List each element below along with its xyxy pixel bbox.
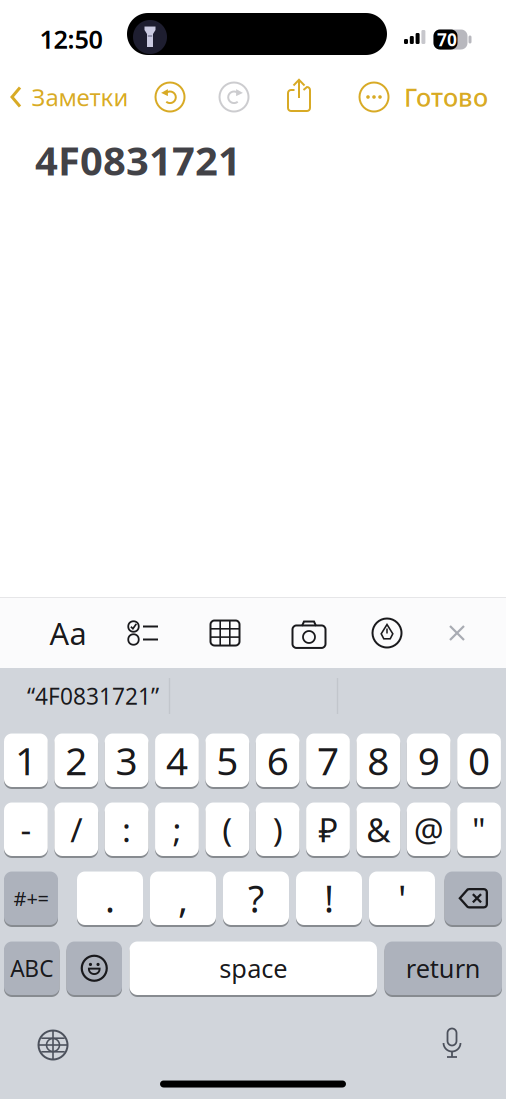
button[interactable] [285, 77, 313, 113]
staticText: 9 [418, 735, 440, 786]
staticText: - [20, 807, 31, 851]
staticText: ; [172, 807, 181, 851]
button[interactable]: " [457, 801, 501, 857]
button[interactable]: ? [223, 870, 289, 926]
button[interactable]: #+= [4, 870, 58, 926]
staticText: , [178, 873, 188, 923]
button[interactable]: 5 [205, 732, 249, 788]
staticText: Aa [49, 613, 86, 653]
staticText: space [219, 951, 287, 985]
button[interactable] [154, 81, 185, 112]
button[interactable]: Готово [404, 80, 488, 114]
button[interactable]: @ [407, 801, 451, 857]
button[interactable]: ₽ [306, 801, 350, 857]
staticText: 0 [468, 735, 490, 786]
staticText: 6 [267, 735, 289, 786]
button[interactable]: 4 [155, 732, 199, 788]
button[interactable] [439, 1026, 465, 1062]
staticText: 70 [437, 28, 457, 51]
button[interactable] [127, 619, 159, 647]
button[interactable]: ABC [4, 940, 59, 996]
button[interactable] [66, 940, 122, 996]
button[interactable]: ) [256, 801, 299, 857]
button[interactable] [36, 1028, 70, 1062]
staticText: 4F0831721 [35, 133, 241, 186]
staticText: " [472, 807, 486, 851]
button[interactable]: 2 [54, 732, 98, 788]
button[interactable] [291, 619, 327, 648]
staticText: 12:50 [39, 22, 102, 56]
button[interactable] [358, 81, 389, 112]
staticText: 8 [367, 735, 389, 786]
button[interactable]: 8 [356, 732, 400, 788]
button[interactable]: 1 [4, 732, 48, 788]
button[interactable]: space [129, 940, 377, 996]
staticText: 3 [116, 735, 138, 786]
button[interactable]: 3 [105, 732, 148, 788]
button[interactable]: ( [205, 801, 249, 857]
button[interactable]: / [54, 801, 98, 857]
button[interactable]: , [150, 870, 216, 926]
staticText: @ [414, 807, 444, 851]
button[interactable]: ; [155, 801, 199, 857]
button[interactable]: ' [369, 870, 435, 926]
staticText: #+= [13, 885, 48, 912]
staticText: 5 [216, 735, 238, 786]
button[interactable]: : [105, 801, 148, 857]
staticText: Заметки [31, 81, 128, 113]
button[interactable] [209, 619, 240, 646]
staticText: & [366, 807, 390, 851]
staticText: return [406, 951, 481, 985]
staticText: 7 [317, 735, 339, 786]
staticText: ( [222, 807, 232, 851]
button[interactable]: Aa [49, 613, 86, 653]
button[interactable] [444, 870, 502, 926]
staticText: ! [324, 873, 334, 923]
button[interactable]: - [4, 801, 48, 857]
staticText: Готово [404, 80, 488, 114]
button[interactable]: 6 [256, 732, 299, 788]
staticText: . [105, 873, 115, 923]
button[interactable]: 7 [306, 732, 350, 788]
staticText: “4F0831721” [27, 681, 159, 711]
button[interactable]: ! [296, 870, 362, 926]
staticText: ABC [10, 953, 53, 983]
staticText: 2 [65, 735, 87, 786]
staticText: 1 [15, 735, 37, 786]
staticText: ) [273, 807, 283, 851]
staticText: ' [398, 873, 406, 923]
button[interactable] [447, 623, 467, 643]
staticText: 4 [166, 735, 188, 786]
button[interactable]: “4F0831721” [27, 681, 159, 711]
button[interactable]: & [356, 801, 400, 857]
staticText: ? [248, 873, 264, 923]
button[interactable]: 9 [407, 732, 451, 788]
staticText: / [70, 807, 82, 851]
button[interactable] [372, 618, 402, 648]
button[interactable] [218, 81, 249, 112]
button[interactable]: 0 [457, 732, 501, 788]
button[interactable]: return [384, 940, 502, 996]
button[interactable]: . [77, 870, 143, 926]
staticText: : [122, 807, 131, 851]
button[interactable]: Заметки [9, 80, 128, 114]
staticText: ₽ [318, 807, 337, 851]
